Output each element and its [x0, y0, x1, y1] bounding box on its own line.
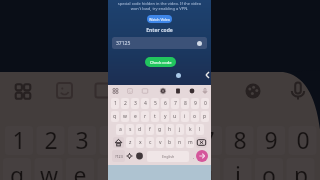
staticText: y — [161, 159, 189, 180]
button[interactable]: x — [136, 137, 144, 148]
button[interactable]: 3 — [131, 98, 139, 109]
staticText: p — [203, 113, 207, 120]
staticText: w — [35, 159, 63, 180]
button[interactable]: 6 — [161, 98, 169, 109]
staticText: 8 — [184, 100, 187, 107]
button[interactable]: , — [190, 150, 197, 162]
button[interactable]: v — [156, 137, 164, 148]
button[interactable]: 2 — [121, 98, 129, 109]
staticText: e — [66, 159, 94, 180]
button[interactable] — [196, 137, 207, 148]
button[interactable]: English — [147, 151, 189, 162]
staticText: o — [255, 159, 283, 180]
staticText: 2 — [124, 100, 127, 107]
staticText: Watch Video — [149, 17, 170, 22]
button[interactable]: m — [186, 137, 194, 148]
button[interactable]: s — [126, 124, 134, 135]
staticText: 6 — [163, 124, 191, 155]
staticText: 37125 — [116, 40, 131, 47]
staticText: a — [119, 126, 122, 133]
staticText: x — [139, 139, 142, 146]
staticText: u — [173, 113, 177, 120]
button[interactable]: e — [131, 111, 139, 122]
button[interactable]: w — [121, 111, 129, 122]
staticText: 5 — [131, 124, 159, 155]
staticText: 3 — [68, 124, 96, 155]
staticText: s — [129, 126, 132, 133]
staticText: English — [162, 154, 175, 159]
staticText: g — [158, 126, 162, 133]
button[interactable]: z — [126, 137, 134, 148]
staticText: 9 — [194, 100, 197, 107]
button[interactable]: 5 — [151, 98, 159, 109]
staticText: e — [134, 113, 137, 120]
staticText: 7 — [174, 100, 177, 107]
button[interactable]: q — [111, 111, 119, 122]
staticText: 5 — [154, 100, 157, 107]
button[interactable]: 9 — [191, 98, 199, 109]
staticText: p — [287, 159, 315, 180]
button[interactable]: 8 — [181, 98, 189, 109]
staticText: r — [98, 159, 126, 180]
staticText: , — [193, 154, 195, 159]
staticText: j — [179, 126, 181, 133]
button[interactable]: 4 — [141, 98, 149, 109]
button[interactable]: u — [171, 111, 179, 122]
button[interactable] — [113, 137, 124, 148]
staticText: n — [178, 139, 182, 146]
button[interactable]: 37125 — [112, 37, 207, 49]
staticText: 9 — [257, 124, 285, 155]
staticText: m — [188, 139, 193, 146]
button[interactable]: j — [176, 124, 184, 135]
staticText: o — [193, 113, 197, 120]
staticText: r — [144, 113, 147, 120]
staticText: c — [149, 139, 152, 146]
staticText: h — [168, 126, 172, 133]
button[interactable]: ?123 — [112, 150, 125, 162]
staticText: 4 — [144, 100, 147, 107]
button[interactable]: i — [181, 111, 189, 122]
button[interactable]: n — [176, 137, 184, 148]
button[interactable]: h — [166, 124, 174, 135]
staticText: 3 — [134, 100, 137, 107]
button[interactable]: Check code — [145, 57, 176, 67]
staticText: b — [168, 139, 172, 146]
button[interactable]: Settings — [125, 150, 134, 162]
staticText: d — [138, 126, 142, 133]
button[interactable]: 7 — [171, 98, 179, 109]
button[interactable]: d — [136, 124, 144, 135]
staticText: Check code — [150, 60, 172, 65]
button[interactable]: f — [146, 124, 154, 135]
staticText: q — [113, 113, 117, 120]
button[interactable]: g — [156, 124, 164, 135]
staticText: z — [129, 139, 132, 146]
button[interactable]: 0 — [201, 98, 209, 109]
button[interactable]: 1 — [111, 98, 119, 109]
staticText: 0 — [289, 124, 317, 155]
staticText: 0 — [204, 100, 207, 107]
button[interactable]: b — [166, 137, 174, 148]
button[interactable]: Watch Video — [147, 15, 172, 23]
staticText: l — [199, 126, 201, 133]
button[interactable]: p — [201, 111, 209, 122]
button[interactable]: Emoji — [135, 150, 144, 162]
button[interactable]: k — [186, 124, 194, 135]
staticText: k — [189, 126, 192, 133]
button[interactable]: c — [146, 137, 154, 148]
button[interactable]: t — [151, 111, 159, 122]
button[interactable]: Enter — [196, 150, 208, 162]
button[interactable]: r — [141, 111, 149, 122]
button[interactable]: l — [196, 124, 204, 135]
button[interactable]: y — [161, 111, 169, 122]
staticText: i — [184, 113, 186, 120]
staticText: special code hidden in the video. If the… — [108, 1, 211, 6]
staticText: ?123 — [115, 154, 123, 159]
staticText: 2 — [37, 124, 65, 155]
staticText: t — [129, 159, 157, 180]
staticText: 7 — [194, 124, 222, 155]
staticText: 1 — [114, 100, 117, 107]
staticText: 6 — [164, 100, 167, 107]
button[interactable]: o — [191, 111, 199, 122]
button[interactable]: a — [116, 124, 124, 135]
staticText: q — [3, 159, 31, 180]
